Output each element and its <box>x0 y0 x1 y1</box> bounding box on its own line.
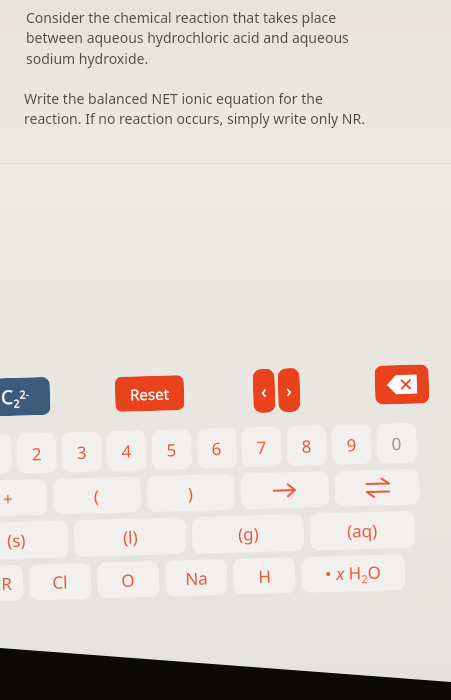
staticText: ‹ <box>261 379 267 404</box>
staticText: H <box>258 565 271 588</box>
staticText: 5 <box>166 438 177 462</box>
staticText: (g) <box>238 522 259 546</box>
staticText: Write the balanced NET ionic equation fo… <box>24 89 365 129</box>
staticText: • x H2O <box>325 561 382 587</box>
button[interactable]: Previous <box>252 369 276 413</box>
button[interactable]: Reset <box>115 375 185 412</box>
button[interactable]: (g) <box>191 514 304 554</box>
button[interactable]: 4 <box>106 430 147 471</box>
staticText: 3 <box>76 441 87 464</box>
button[interactable]: 0 <box>376 423 417 464</box>
button[interactable]: 6 <box>196 428 237 469</box>
staticText: 0 <box>391 432 402 455</box>
button[interactable]: (s) <box>0 520 69 560</box>
button[interactable]: 1 <box>0 434 12 475</box>
button[interactable]: Backspace <box>374 364 429 405</box>
staticText: 2 <box>31 442 42 465</box>
staticText: Reset <box>130 383 169 405</box>
button[interactable]: 8 <box>286 425 327 466</box>
staticText: + <box>3 487 13 510</box>
staticText: 6 <box>211 437 222 460</box>
button[interactable]: (aq) <box>309 511 415 551</box>
button[interactable]: + <box>0 479 47 517</box>
button[interactable]: C22- <box>0 377 51 417</box>
staticText: NR <box>0 572 13 596</box>
staticText: Consider the chemical reaction that take… <box>26 8 349 69</box>
button[interactable]: Na <box>165 559 228 597</box>
staticText: 7 <box>256 436 267 459</box>
button[interactable]: 2 <box>16 433 57 474</box>
button[interactable]: 9 <box>331 424 372 465</box>
staticText: (s) <box>7 529 26 552</box>
button[interactable]: H <box>233 557 296 595</box>
button[interactable]: 3 <box>61 431 102 472</box>
button[interactable] <box>240 471 329 509</box>
staticText: ) <box>188 482 194 505</box>
button[interactable]: ) <box>146 474 235 512</box>
staticText: › <box>286 378 292 403</box>
staticText: O <box>121 568 136 592</box>
button[interactable]: 5 <box>151 429 192 470</box>
staticText: 9 <box>346 433 357 457</box>
staticText: Na <box>185 566 208 590</box>
button[interactable]: 7 <box>241 426 282 467</box>
button[interactable]: Cl <box>29 563 92 600</box>
button[interactable] <box>334 469 420 507</box>
staticText: 4 <box>121 440 132 463</box>
staticText: Cl <box>52 570 69 594</box>
staticText: (l) <box>123 525 138 549</box>
button[interactable]: ( <box>52 476 141 515</box>
staticText: 8 <box>301 435 312 458</box>
staticText: C22- <box>1 383 30 411</box>
button[interactable]: Next <box>277 368 301 412</box>
button[interactable]: O <box>97 561 160 599</box>
staticText: (aq) <box>347 519 378 543</box>
staticText: ( <box>94 484 100 508</box>
button[interactable]: (l) <box>74 517 187 557</box>
button[interactable]: • x H2O <box>301 554 406 593</box>
button[interactable]: NR <box>0 565 24 602</box>
